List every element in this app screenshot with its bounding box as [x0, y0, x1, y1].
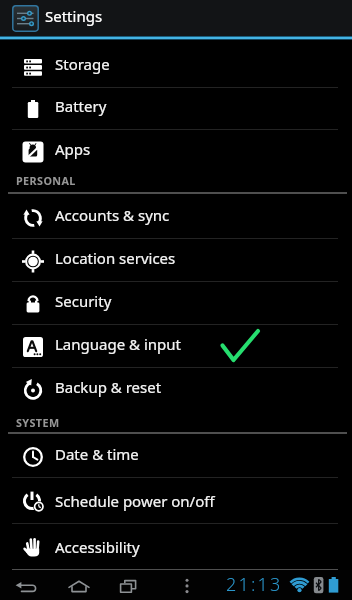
- button[interactable]: [12, 570, 40, 598]
- staticText: Battery: [55, 96, 107, 116]
- staticText: 21:13: [226, 572, 283, 597]
- button[interactable]: Apps: [0, 130, 352, 173]
- staticText: SYSTEM: [16, 415, 60, 430]
- button[interactable]: Schedule power on/off: [0, 478, 352, 524]
- staticText: Location services: [55, 248, 176, 268]
- button[interactable]: Backup & reset: [0, 368, 352, 411]
- button[interactable]: Accounts & sync: [0, 196, 352, 239]
- staticText: Backup & reset: [55, 377, 162, 397]
- staticText: PERSONAL: [16, 173, 76, 188]
- staticText: Accounts & sync: [55, 205, 170, 225]
- staticText: Settings: [45, 6, 103, 26]
- button[interactable]: [65, 570, 93, 598]
- button[interactable]: Security: [0, 282, 352, 325]
- staticText: Storage: [55, 54, 110, 74]
- button[interactable]: Storage: [0, 45, 352, 88]
- button[interactable]: Battery: [0, 88, 352, 130]
- staticText: Schedule power on/off: [55, 491, 215, 511]
- button[interactable]: [173, 570, 201, 598]
- button[interactable]: Date & time: [0, 435, 352, 478]
- staticText: Accessibility: [55, 537, 140, 557]
- button[interactable]: Location services: [0, 239, 352, 282]
- button[interactable]: [115, 570, 143, 598]
- button[interactable]: Language & input: [0, 325, 352, 368]
- staticText: Security: [55, 291, 112, 311]
- staticText: Language & input: [55, 334, 181, 354]
- staticText: Apps: [55, 139, 91, 159]
- staticText: Date & time: [55, 444, 139, 464]
- button[interactable]: Accessibility: [0, 524, 352, 570]
